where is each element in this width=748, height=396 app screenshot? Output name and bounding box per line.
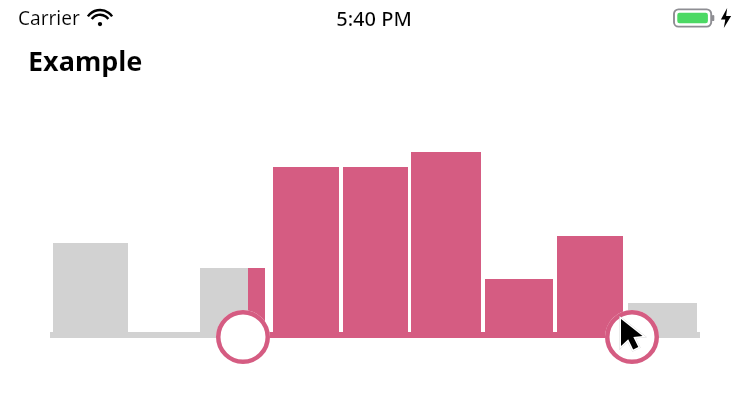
staticText: Example [28, 42, 143, 79]
staticText: Carrier [18, 5, 80, 31]
staticText: 5:40 PM [336, 5, 412, 32]
button[interactable]: Range slider chart [0, 0, 748, 396]
